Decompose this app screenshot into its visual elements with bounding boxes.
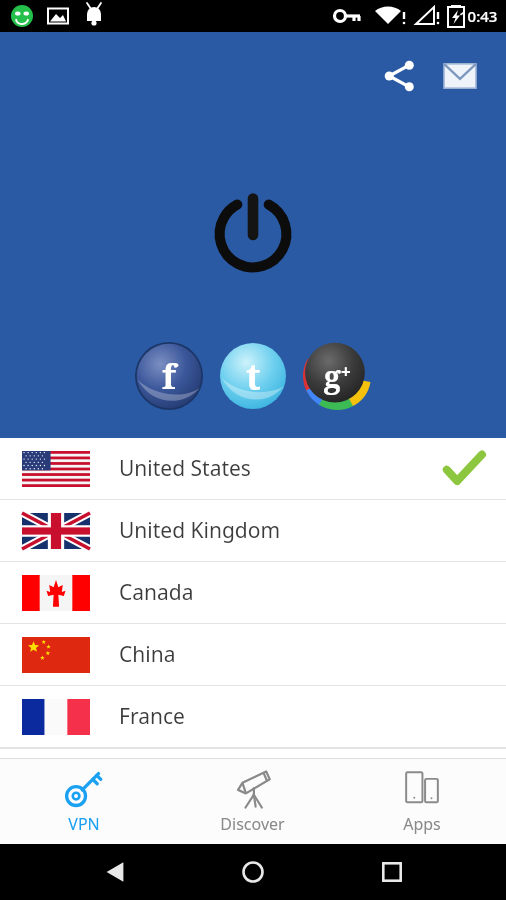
button[interactable]: Canada [0,562,506,624]
button[interactable]: United Kingdom [0,500,506,562]
button[interactable]: Back [91,848,139,896]
button[interactable]: Google Plus [300,339,374,413]
button[interactable]: Email [434,50,486,102]
staticText: Discover [220,813,285,835]
button[interactable]: United States [0,438,506,500]
staticText: 10:43 [459,6,498,26]
button[interactable]: Recent apps [368,848,416,896]
staticText: + [341,360,351,383]
staticText: Apps [403,813,441,835]
staticText: United States [119,454,444,483]
staticText: Canada [119,578,484,607]
staticText: United Kingdom [119,516,484,545]
button[interactable]: Apps [337,758,506,844]
button[interactable]: France [0,686,506,748]
staticText: f [162,353,176,399]
button[interactable]: China [0,624,506,686]
staticText: t [246,352,261,401]
button[interactable]: Power / Connect VPN [198,179,308,289]
button[interactable]: f [132,339,206,413]
staticText: VPN [68,813,100,835]
button[interactable]: Home [229,848,277,896]
button[interactable]: Twitter [216,339,290,413]
button[interactable]: Share [374,50,426,102]
button[interactable]: VPN [0,758,168,844]
staticText: China [119,640,484,669]
staticText: g [324,356,341,397]
staticText: France [119,702,484,731]
button[interactable]: Discover [168,758,337,844]
